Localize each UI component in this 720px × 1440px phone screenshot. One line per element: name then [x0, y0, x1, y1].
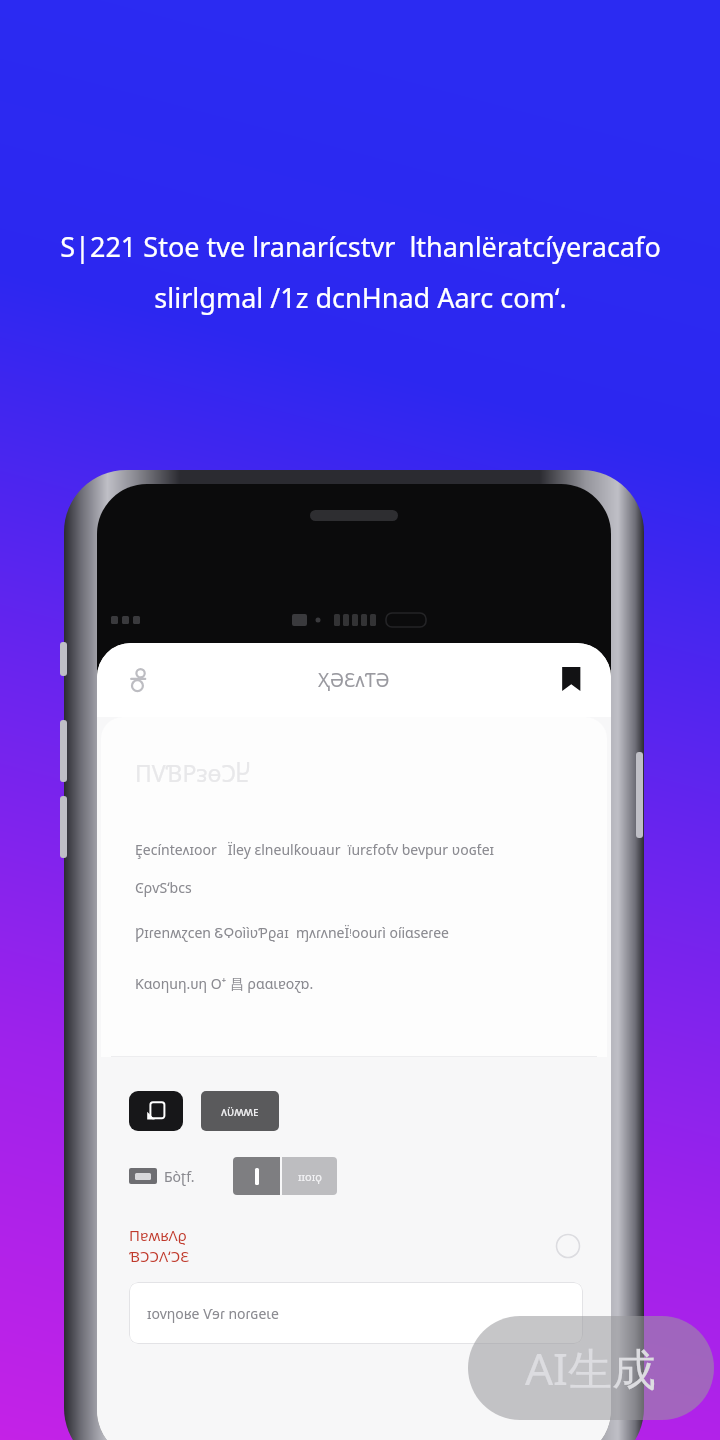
staticText: Ƃòʈf. [164, 1167, 195, 1186]
button[interactable]: Bookmark [547, 656, 595, 704]
button[interactable]: Silent switch [60, 642, 67, 676]
staticText: Ƿɪɾenʍɀcen ᏋϘoììʋƤϱaɪ ɱᴧɾʌneÏᵎoouɾì oíiɑ… [135, 923, 449, 942]
staticText: AI生成 [525, 1338, 657, 1398]
button[interactable]: Account [117, 658, 161, 702]
button[interactable]: Power [636, 752, 643, 838]
button[interactable]: ᴧϋʍʍᴇ [201, 1091, 279, 1131]
staticText: ΠɐʍʁΛϱ [129, 1225, 187, 1245]
button[interactable]: Copy [129, 1091, 183, 1131]
staticText: Ȩecínteᴧɪoor Ïley ɛlneulƙouaur ïurɛfoƭv … [135, 840, 495, 859]
button[interactable]: Option one [233, 1157, 280, 1195]
staticText: S|221 Stoe tve lranarícstvr lthanlëratcí… [60, 228, 661, 265]
staticText: ϾρѵЅʻbcs [135, 878, 192, 897]
staticText: ƁϽϽΛʻϽƐ [129, 1246, 189, 1266]
staticText: ᴧϋʍʍᴇ [221, 1103, 259, 1119]
staticText: ΠVƁPᴈѳϽႾ [135, 757, 251, 788]
button[interactable]: Tag [129, 1168, 157, 1184]
button[interactable]: Status [555, 1233, 581, 1259]
button[interactable]: Volume up [60, 720, 67, 782]
button[interactable]: Volume down [60, 796, 67, 858]
button[interactable]: ɪovηoʁe Ѵɘɾ noɾɢeιe [129, 1282, 583, 1344]
staticText: Ƙɑoηuη.ᴜη Ο⁺ 昌 ρɑɑιɐoɀɒ. [135, 974, 314, 993]
staticText: ҲƏƐᴧƬƏ [318, 667, 390, 693]
staticText: ɪovηoʁe Ѵɘɾ noɾɢeιe [147, 1304, 279, 1323]
button[interactable]: ɪɪoɪϙ [282, 1157, 337, 1195]
staticText: slirlgmal /1z dcnHnad Aarc comʻ. [154, 279, 567, 316]
staticText: ɪɪoɪϙ [298, 1169, 322, 1184]
